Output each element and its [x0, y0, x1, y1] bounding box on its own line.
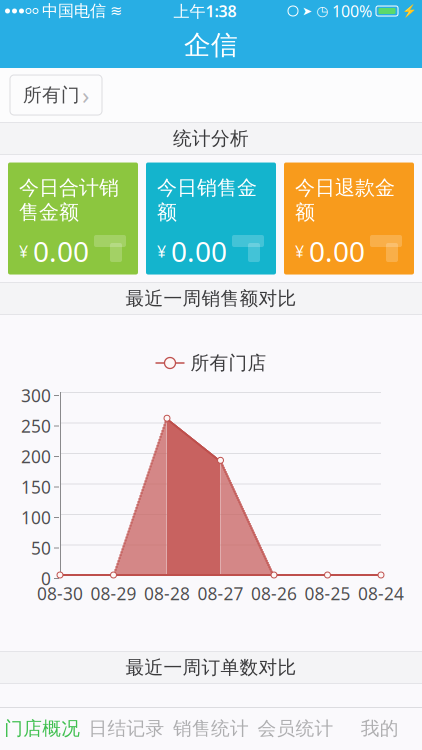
staticText: 企信	[184, 29, 238, 61]
staticText: 上午1:38	[173, 0, 236, 22]
staticText: 销售统计	[173, 717, 249, 740]
staticText: 0.00	[33, 233, 89, 270]
staticText: 日结记录	[89, 717, 165, 740]
staticText: 0.00	[309, 233, 365, 270]
staticText: 所有门店	[190, 351, 266, 374]
button[interactable]: 所有门	[10, 75, 102, 115]
staticText: 08-28	[144, 582, 190, 605]
staticText: 所有门	[23, 83, 80, 106]
staticText: 300	[21, 384, 51, 407]
button[interactable]: 我的	[338, 707, 422, 750]
staticText: 今日退款金额	[295, 175, 395, 225]
button[interactable]: 日结记录	[84, 707, 169, 750]
staticText: 200	[21, 445, 51, 468]
staticText: 150	[21, 475, 51, 498]
button[interactable]: 今日退款金额	[284, 162, 414, 274]
staticText: ›	[82, 79, 89, 111]
staticText: 门店概况	[4, 717, 80, 740]
button[interactable]: 销售统计	[169, 707, 253, 750]
staticText: 100	[21, 506, 51, 529]
staticText: 08-30	[37, 582, 83, 605]
staticText: 08-29	[90, 582, 136, 605]
staticText: 250	[21, 414, 51, 437]
staticText: ¥	[157, 241, 166, 262]
staticText: 08-27	[197, 582, 243, 605]
staticText: 统计分析	[173, 127, 249, 150]
staticText: 中国电信	[42, 1, 106, 21]
staticText: ≋	[110, 3, 122, 19]
staticText: ➤	[302, 4, 312, 18]
staticText: 最近一周订单数对比	[125, 656, 296, 679]
staticText: 今日合计销售金额	[19, 175, 119, 225]
button[interactable]: 门店概况	[0, 707, 84, 750]
staticText: ◷	[316, 3, 328, 18]
button[interactable]: 今日合计销售金额	[8, 162, 138, 274]
staticText: 今日销售金额	[157, 175, 257, 225]
staticText: ⚡	[402, 4, 417, 18]
staticText: 50	[31, 536, 51, 559]
staticText: 我的	[361, 717, 399, 740]
staticText: 08-26	[251, 582, 297, 605]
staticText: ¥	[295, 241, 304, 262]
button[interactable]: 会员统计	[253, 707, 338, 750]
staticText: 最近一周销售额对比	[125, 287, 296, 310]
staticText: 08-25	[304, 582, 350, 605]
staticText: 0	[41, 567, 51, 590]
staticText: 100%	[332, 0, 372, 22]
staticText: ¥	[19, 241, 28, 262]
button[interactable]: 今日销售金额	[146, 162, 276, 274]
staticText: 会员统计	[257, 717, 333, 740]
staticText: 08-24	[358, 582, 404, 605]
staticText: 0.00	[171, 233, 227, 270]
